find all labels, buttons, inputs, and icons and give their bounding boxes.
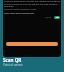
staticText: Scan QR	[3, 57, 22, 63]
button[interactable]: OK	[54, 16, 60, 19]
staticText: Allow this application to access the cam…	[4, 0, 60, 7]
button[interactable]	[6, 42, 58, 46]
staticText: OK	[56, 16, 59, 19]
button[interactable]: Cancel	[44, 16, 53, 19]
staticText: Cancel	[45, 16, 52, 19]
staticText: Used only while scanning a code	[4, 8, 36, 11]
staticText: Point at screen	[3, 63, 23, 67]
button[interactable]: Learn more about permissions	[4, 12, 35, 15]
